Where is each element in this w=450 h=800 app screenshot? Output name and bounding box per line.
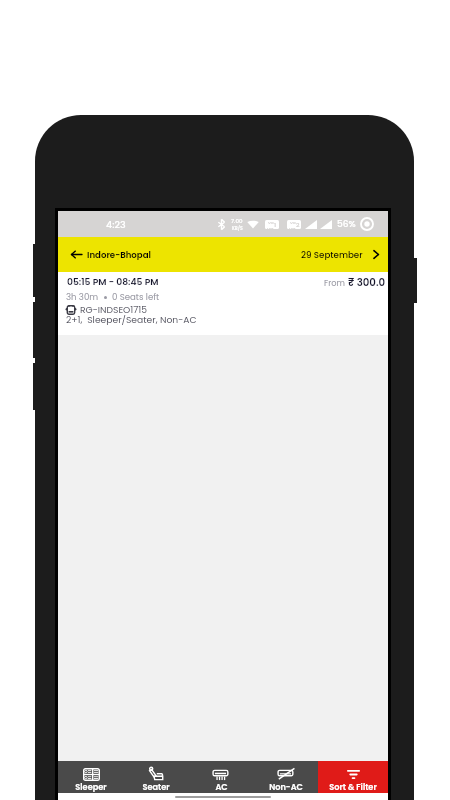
button[interactable]: Sleeper: [58, 761, 123, 793]
staticText: 05:15 PM - 08:45 PM: [67, 275, 159, 288]
staticText: KB/S: [232, 225, 243, 231]
staticText: 4:23: [106, 218, 126, 231]
staticText: Sort & Filter: [329, 781, 377, 792]
staticText: 2: [296, 221, 300, 229]
button[interactable]: Sort & Filter: [318, 761, 388, 793]
staticText: 2+1, Sleeper/Seater, Non-AC: [66, 313, 197, 326]
staticText: Vo: [268, 220, 274, 226]
button[interactable]: Back: [68, 237, 84, 272]
staticText: 0 Seats left: [112, 291, 160, 303]
staticText: LTE: [267, 226, 274, 229]
button[interactable]: Seater: [123, 761, 188, 793]
staticText: RG-INDSEO1715: [80, 303, 148, 316]
button[interactable]: Non-AC: [253, 761, 318, 793]
staticText: Vo: [290, 220, 296, 226]
staticText: 29 September: [301, 249, 363, 261]
staticText: ₹ 300.0: [348, 275, 386, 289]
button[interactable]: AC: [188, 761, 253, 793]
staticText: 56%: [337, 218, 356, 231]
button[interactable]: Next day: [368, 237, 384, 272]
staticText: Indore-Bhopal: [87, 249, 151, 261]
staticText: LTE: [289, 226, 296, 229]
staticText: From: [324, 277, 348, 288]
button[interactable]: 05:15 PM - 08:45 PM: [58, 272, 388, 335]
staticText: 3h 30m: [66, 291, 99, 303]
staticText: AC: [215, 781, 228, 792]
staticText: 1: [274, 221, 277, 229]
staticText: Seater: [142, 781, 170, 792]
staticText: 7.00: [231, 217, 243, 225]
staticText: Non-AC: [269, 781, 303, 792]
staticText: Sleeper: [75, 781, 107, 792]
